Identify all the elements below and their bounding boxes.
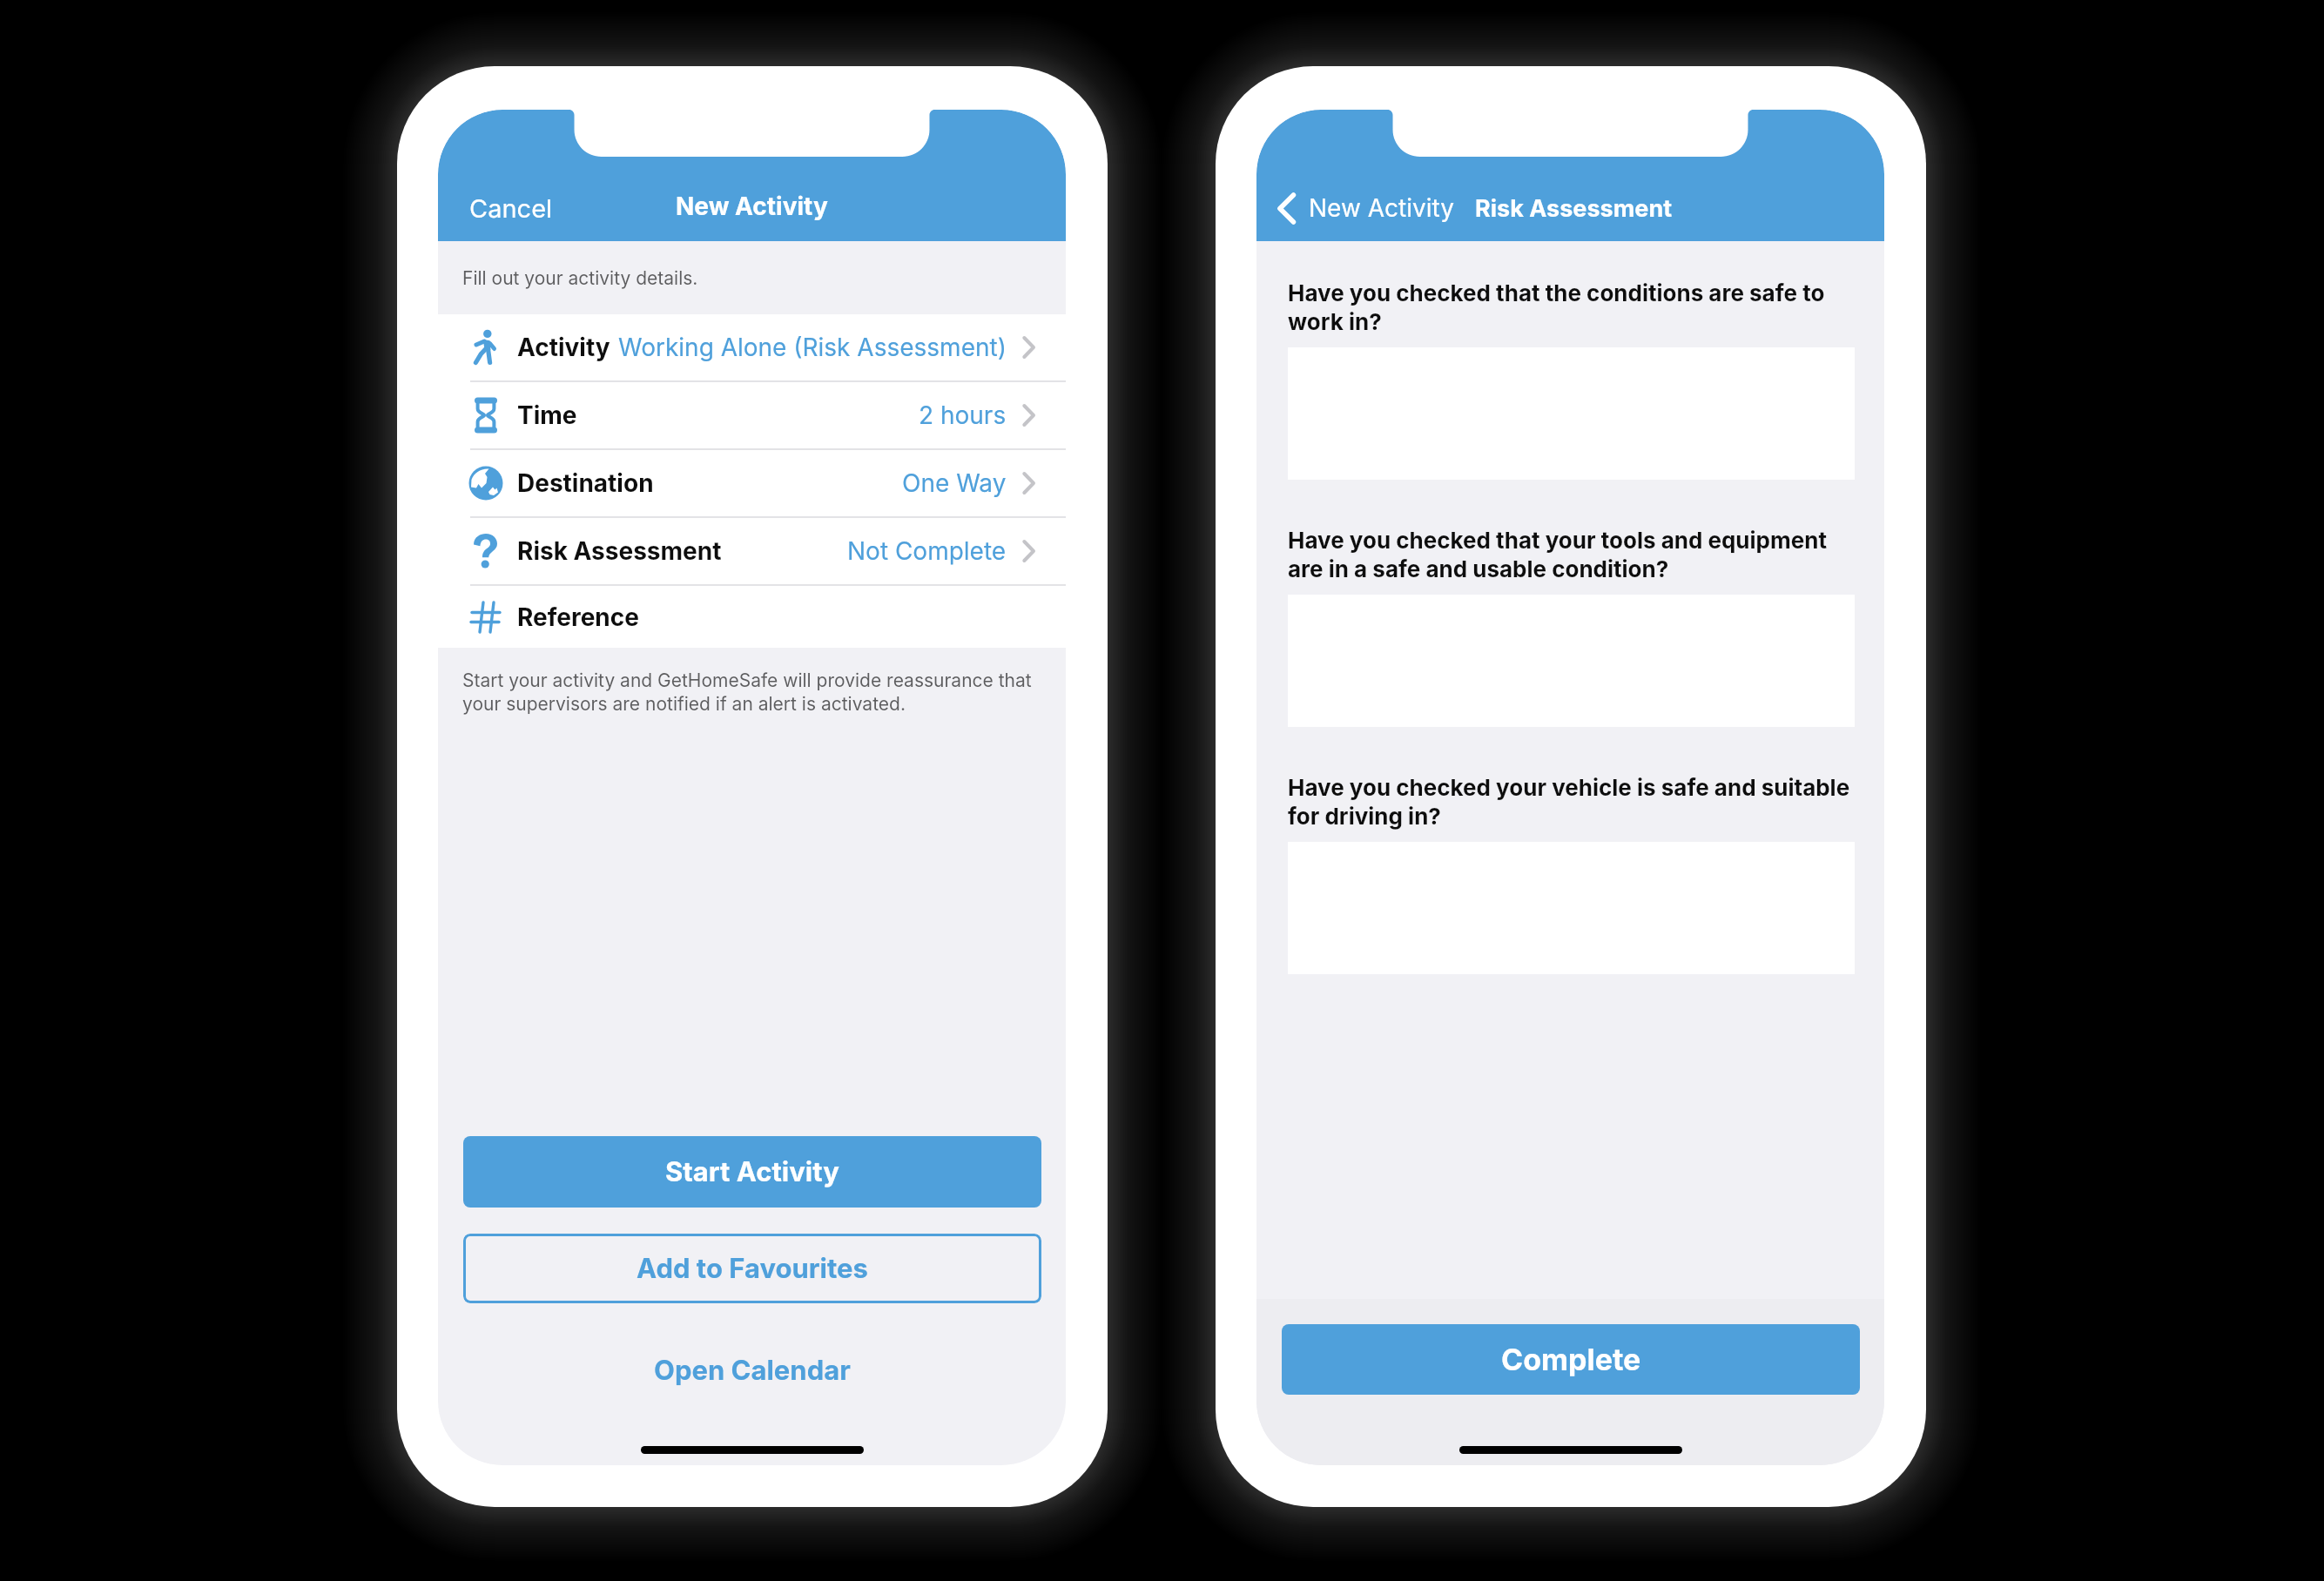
button[interactable]: Open Calendar: [463, 1339, 1041, 1402]
button[interactable]: Risk Assessment: [438, 518, 1066, 584]
button[interactable]: Back to New Activity: [1268, 186, 1465, 230]
staticText: New Activity: [1309, 193, 1454, 223]
staticText: Have you checked that the conditions are…: [1288, 279, 1860, 336]
staticText: Fill out your activity details.: [462, 267, 698, 289]
staticText: Risk Assessment: [517, 536, 722, 566]
staticText: Working Alone (Risk Assessment): [618, 333, 1007, 362]
staticText: Open Calendar: [654, 1354, 851, 1387]
staticText: Start your activity and GetHomeSafe will…: [462, 669, 1050, 715]
staticText: Have you checked your vehicle is safe an…: [1288, 774, 1860, 831]
staticText: Start Activity: [665, 1155, 839, 1188]
staticText: Not Complete: [847, 536, 1007, 566]
button[interactable]: Activity: [438, 314, 1066, 380]
staticText: Activity: [517, 333, 610, 362]
staticText: New Activity: [676, 192, 828, 221]
staticText: Add to Favourites: [637, 1252, 868, 1285]
staticText: Reference: [517, 602, 639, 632]
button[interactable]: Start Activity: [463, 1136, 1041, 1208]
staticText: Destination: [517, 468, 654, 498]
staticText: Complete: [1501, 1342, 1641, 1377]
button[interactable]: Complete: [1282, 1324, 1860, 1395]
staticText: Have you checked that your tools and equ…: [1288, 527, 1860, 583]
button[interactable]: Time: [438, 382, 1066, 448]
staticText: One Way: [902, 468, 1007, 498]
button[interactable]: Destination: [438, 450, 1066, 516]
staticText: Risk Assessment: [1475, 194, 1673, 223]
button[interactable]: Cancel: [454, 185, 569, 232]
staticText: Cancel: [469, 193, 553, 224]
staticText: 2 hours: [919, 400, 1007, 430]
button[interactable]: Reference: [438, 586, 1066, 648]
staticText: Time: [517, 400, 577, 430]
button[interactable]: Add to Favourites: [463, 1234, 1041, 1303]
